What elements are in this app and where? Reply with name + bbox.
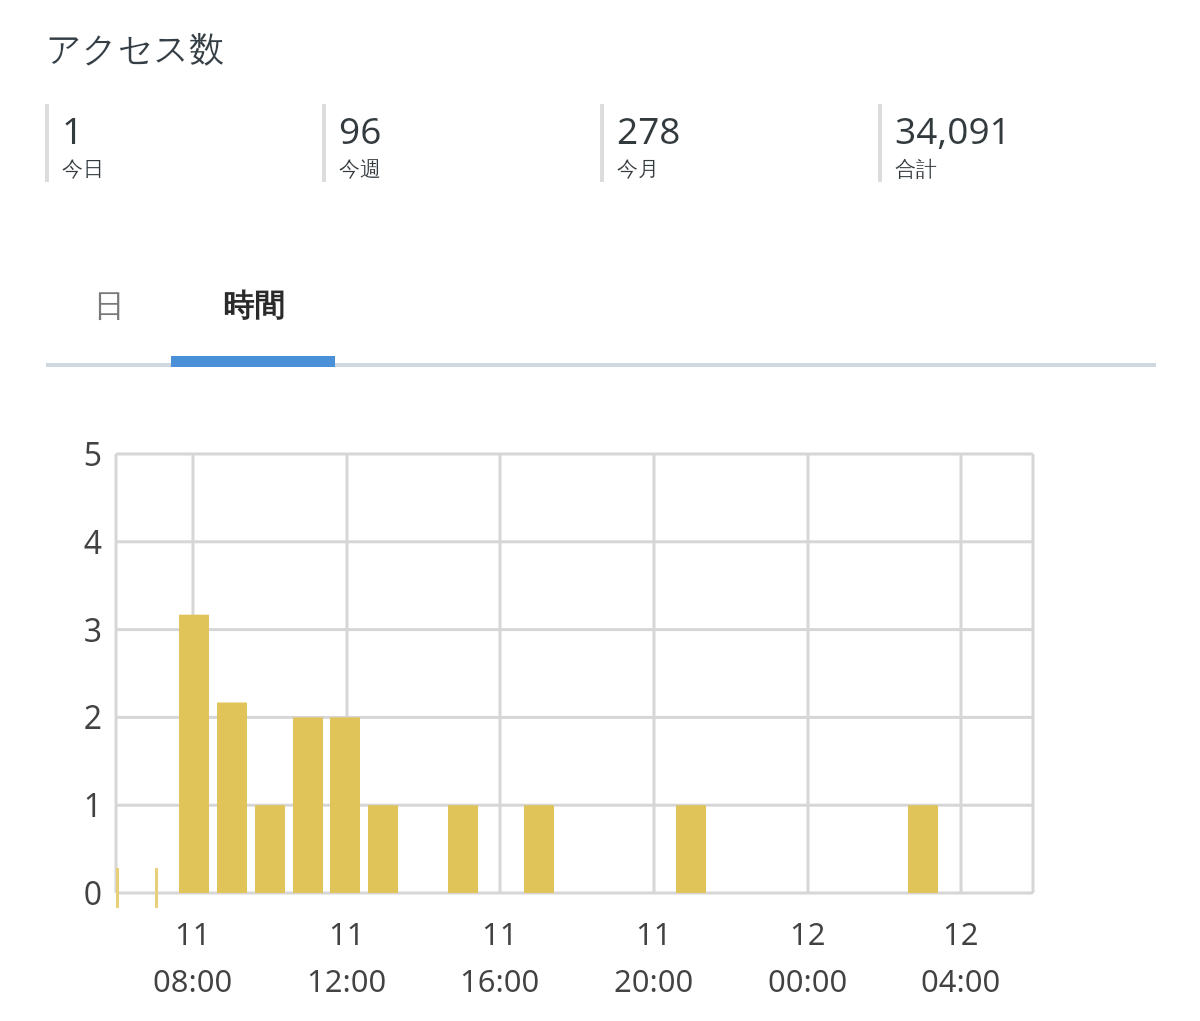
staticText: 3 <box>62 608 102 652</box>
staticText: 20:00 <box>614 959 694 1001</box>
button[interactable]: 96 <box>322 104 572 182</box>
staticText: 04:00 <box>921 959 1001 1001</box>
staticText: 今週 <box>339 156 381 182</box>
staticText: 5 <box>62 432 102 476</box>
staticText: 合計 <box>895 156 937 182</box>
staticText: 1 <box>62 783 102 827</box>
staticText: 16:00 <box>460 959 540 1001</box>
staticText: 12 <box>943 912 979 954</box>
staticText: 2 <box>62 695 102 739</box>
button[interactable]: 34,091 <box>878 104 1128 182</box>
staticText: 11 <box>636 912 672 954</box>
button[interactable]: 時間 <box>172 272 335 364</box>
staticText: 12 <box>790 912 826 954</box>
staticText: 4 <box>62 520 102 564</box>
staticText: 34,091 <box>895 104 1011 154</box>
staticText: 1 <box>62 104 84 154</box>
staticText: 11 <box>175 912 211 954</box>
button[interactable]: 1 <box>45 104 295 182</box>
button[interactable]: 278 <box>600 104 850 182</box>
staticText: 12:00 <box>307 959 387 1001</box>
staticText: 今日 <box>62 156 104 182</box>
staticText: アクセス数 <box>46 27 225 71</box>
staticText: 00:00 <box>768 959 848 1001</box>
staticText: 96 <box>339 104 382 154</box>
staticText: 11 <box>329 912 365 954</box>
staticText: 278 <box>617 104 681 154</box>
staticText: 08:00 <box>153 959 233 1001</box>
button[interactable]: 日 <box>46 272 172 364</box>
staticText: 時間 <box>223 286 285 325</box>
staticText: 今月 <box>617 156 659 182</box>
staticText: 日 <box>94 286 125 325</box>
staticText: 11 <box>482 912 518 954</box>
staticText: 0 <box>62 871 102 915</box>
